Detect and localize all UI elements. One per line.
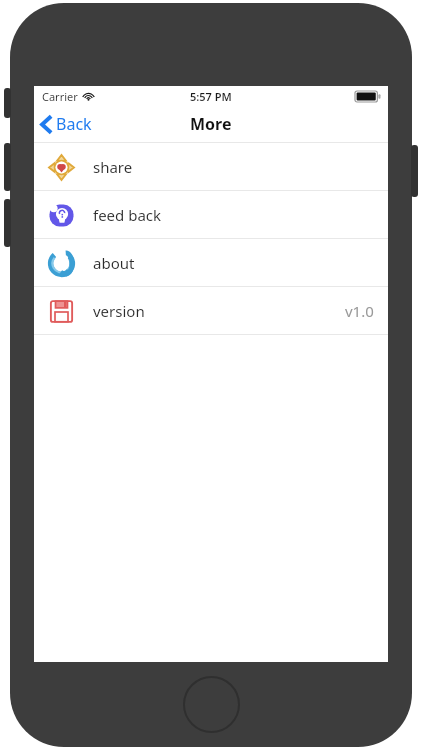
staticText: feed back	[93, 205, 162, 225]
other: Share	[48, 154, 74, 180]
staticText: Carrier	[42, 89, 78, 104]
other: Version	[48, 298, 74, 324]
button[interactable]: Back	[34, 109, 104, 139]
staticText: version	[93, 301, 145, 321]
staticText: Back	[56, 113, 92, 135]
staticText: More	[190, 113, 232, 135]
staticText: 5:57 PM	[190, 89, 232, 104]
button[interactable]: Version	[34, 287, 388, 334]
button[interactable]: About	[34, 239, 388, 286]
staticText: about	[93, 253, 135, 273]
staticText: v1.0	[345, 301, 374, 321]
staticText: share	[93, 157, 133, 177]
button[interactable]: Feedback	[34, 191, 388, 238]
other: Feedback	[48, 202, 74, 228]
other: Back	[41, 115, 52, 134]
other: About	[48, 250, 74, 276]
button[interactable]: Share	[34, 143, 388, 190]
